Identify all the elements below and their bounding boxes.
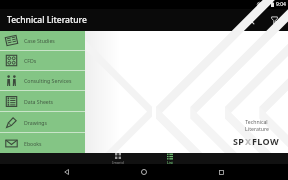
staticText: 9:04 [276,1,286,8]
staticText: Literature [245,125,269,132]
staticText: Technical Literature [7,14,87,26]
button[interactable]: Consulting Services [0,71,85,90]
staticText: X [245,135,252,147]
button[interactable]: List [153,153,187,164]
button[interactable]: Filter [265,11,283,29]
button[interactable]: Case Studies [0,31,85,50]
button[interactable]: Data Sheets [0,91,85,111]
staticText: Case Studies [24,37,55,44]
button[interactable]: Recent apps [211,164,231,180]
staticText: Ebooks [24,140,42,147]
staticText: Consulting Services [24,77,72,84]
staticText: Imgrid [112,160,124,164]
staticText: Technical [245,118,268,125]
button[interactable]: Imgrid [101,153,135,164]
button[interactable]: Drawings [0,112,85,132]
staticText: FLOW [252,135,280,147]
staticText: CFDs [24,57,37,64]
button[interactable]: Ebooks [0,133,85,153]
staticText: List [167,160,173,164]
staticText: Data Sheets [24,98,54,105]
staticText: Drawings [24,119,48,126]
button[interactable]: Search [241,11,259,29]
button[interactable]: Back [57,164,77,180]
button[interactable]: Home [134,164,154,180]
button[interactable]: CFDs [0,51,85,70]
staticText: SP [233,135,245,147]
